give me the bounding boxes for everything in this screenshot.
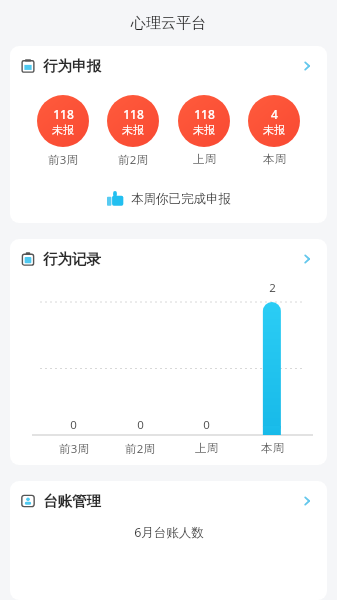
button[interactable]: 118 [107,95,159,147]
button[interactable]: 台账管理 [10,481,327,516]
staticText: 2 [269,280,276,296]
staticText: 台账管理 [43,492,101,510]
staticText: 本周 [263,152,286,166]
staticText: 未报 [52,123,74,137]
staticText: 上周 [193,152,216,166]
staticText: 未报 [263,123,285,137]
staticText: 6月台账人数 [134,524,204,541]
staticText: 行为记录 [43,250,101,268]
staticText: 未报 [193,123,215,137]
button[interactable]: 行为记录 [10,239,327,274]
staticText: 118 [123,106,144,122]
staticText: 心理云平台 [131,14,206,33]
button[interactable]: 118 [178,95,230,147]
staticText: 118 [53,106,74,122]
staticText: 前2周 [125,441,155,457]
staticText: 前3周 [48,152,78,168]
other: 查看更多 行为记录 [298,250,316,268]
staticText: 前2周 [118,152,148,168]
other: 查看更多 行为申报 [298,57,316,75]
button[interactable]: 本周你已完成申报 [10,184,327,213]
staticText: 118 [194,106,215,122]
staticText: 前3周 [59,441,89,457]
staticText: 本周 [261,441,284,455]
staticText: 未报 [122,123,144,137]
button[interactable]: 4 [248,95,300,147]
staticText: 行为申报 [43,57,101,75]
staticText: 0 [203,417,210,433]
staticText: 0 [70,417,77,433]
button[interactable]: 118 [37,95,89,147]
other: 查看更多 台账管理 [298,492,316,510]
staticText: 0 [137,417,144,433]
button[interactable]: 行为申报 [10,46,327,81]
staticText: 上周 [195,441,218,455]
staticText: 本周你已完成申报 [131,191,231,207]
staticText: 4 [271,106,278,122]
